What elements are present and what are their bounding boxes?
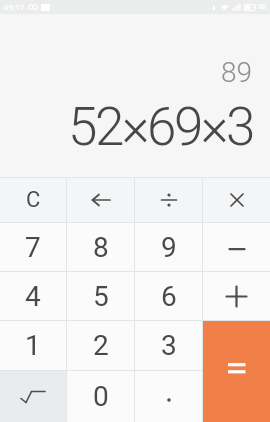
button[interactable]: 6 [135,272,202,320]
staticText: 7 [25,231,41,264]
button[interactable] [0,371,66,422]
button[interactable] [135,178,202,222]
staticText: 2 [93,329,109,362]
staticText: 50 [258,3,266,11]
staticText: 9 [161,231,177,264]
staticText: 09:17 [4,3,24,12]
staticText: 0 [93,380,109,413]
button[interactable]: 4 [0,272,66,320]
button[interactable] [135,371,202,422]
button[interactable]: 8 [67,223,134,271]
staticText: 6 [161,280,177,313]
button[interactable]: 1 [0,321,66,370]
button[interactable] [203,321,270,422]
button[interactable]: 3 [135,321,202,370]
button[interactable] [203,178,270,222]
staticText: 1 [25,329,41,362]
button[interactable]: 9 [135,223,202,271]
staticText: 52×69×3 [68,96,253,158]
staticText: 8 [93,231,109,264]
staticText: 4 [25,280,41,313]
button[interactable]: 5 [67,272,134,320]
button[interactable]: 7 [0,223,66,271]
button[interactable] [203,223,270,271]
button[interactable] [67,178,134,222]
button[interactable]: 0 [67,371,134,422]
staticText: 5 [93,280,109,313]
button[interactable] [203,272,270,320]
button[interactable]: C [0,178,66,222]
staticText: 89 [221,56,253,89]
staticText: 3 [161,329,177,362]
button[interactable]: 2 [67,321,134,370]
staticText: C [26,187,41,213]
